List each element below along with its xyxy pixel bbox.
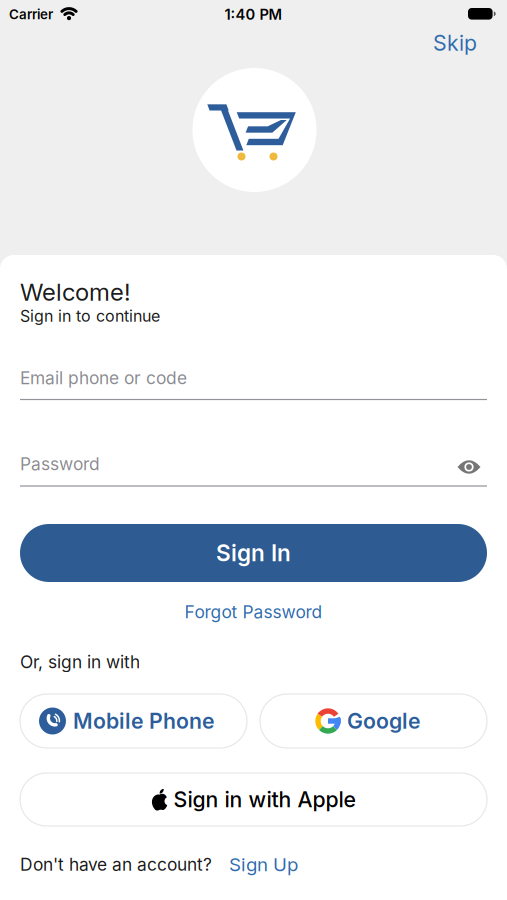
staticText: Sign Up [229, 853, 298, 875]
staticText: Mobile Phone [73, 708, 215, 734]
staticText: Skip [433, 30, 477, 56]
staticText: 1:40 PM [224, 6, 282, 23]
button[interactable]: Show password [457, 459, 480, 475]
button[interactable]: Forgot Password [184, 602, 322, 622]
button[interactable]: Skip [433, 30, 477, 56]
staticText: Google [347, 708, 421, 734]
button[interactable]: Sign In [20, 524, 487, 582]
staticText: Email phone or code [20, 368, 187, 388]
staticText: Sign in to continue [20, 307, 160, 325]
staticText: Sign In [216, 540, 291, 566]
button[interactable]: Mobile Phone [20, 694, 247, 748]
staticText: Don't have an account? [20, 854, 212, 875]
staticText: Password [20, 454, 100, 474]
button[interactable]: Google [260, 694, 487, 748]
button[interactable]: Sign Up [229, 853, 298, 875]
staticText: Carrier [9, 7, 53, 22]
staticText: Welcome! [20, 278, 131, 306]
staticText: Forgot Password [184, 602, 322, 622]
button[interactable]: Sign in with Apple [20, 773, 487, 826]
staticText: Sign in with Apple [173, 787, 355, 812]
staticText: Or, sign in with [20, 652, 140, 672]
